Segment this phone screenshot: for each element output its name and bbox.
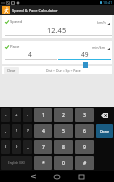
button[interactable]: * — [34, 156, 52, 170]
staticText: 3 — [83, 112, 86, 119]
staticText: ? — [27, 128, 29, 134]
staticText: ( — [5, 144, 7, 150]
staticText: _ — [27, 144, 29, 150]
staticText: km/h — [97, 20, 106, 25]
button[interactable]: Recents — [69, 171, 93, 182]
staticText: 0 — [62, 160, 65, 167]
button[interactable]: 4 — [34, 124, 52, 138]
staticText: , — [5, 128, 7, 134]
button[interactable]: 7 — [34, 140, 52, 154]
button[interactable]: ? — [23, 124, 32, 138]
staticText: # — [83, 160, 87, 167]
button[interactable]: 2 — [54, 108, 73, 122]
staticText: 4 — [42, 128, 45, 135]
button[interactable]: 8 — [54, 140, 73, 154]
staticText: Done — [100, 129, 110, 134]
button[interactable]: Done — [96, 124, 113, 138]
staticText: 9 — [83, 144, 86, 151]
button[interactable]: English (UK) — [1, 156, 32, 170]
staticText: Dist ÷ Dur = Sp ÷ Pace — [46, 68, 81, 73]
button[interactable]: Home — [45, 171, 69, 182]
staticText: 10:41 — [103, 0, 113, 5]
staticText: ) — [16, 144, 18, 150]
staticText: Speed — [10, 19, 23, 25]
button[interactable]: # — [75, 156, 94, 170]
staticText: 7 — [42, 144, 45, 151]
staticText: 8 — [62, 144, 65, 151]
button[interactable]: Clear — [4, 67, 19, 74]
staticText: Clear — [7, 68, 16, 73]
button[interactable]: 5 — [54, 124, 73, 138]
staticText: 12.45 — [47, 25, 67, 35]
button[interactable]: 3 — [75, 108, 94, 122]
button[interactable]: , — [1, 124, 10, 138]
button[interactable]: Back — [21, 171, 45, 182]
staticText: 49 — [81, 50, 89, 59]
staticText: . — [27, 112, 29, 118]
staticText: 4 — [28, 50, 32, 59]
button[interactable]: . — [23, 108, 32, 122]
button[interactable]: 9 — [75, 140, 94, 154]
staticText: English (UK) — [8, 161, 25, 165]
button[interactable]: ) — [12, 140, 21, 154]
button[interactable]: _ — [23, 140, 32, 154]
staticText: Pace — [10, 44, 20, 50]
staticText: 2 — [62, 112, 65, 119]
staticText: min/km — [92, 45, 106, 50]
button[interactable]: 0 — [54, 156, 73, 170]
staticText: 6 — [83, 128, 86, 135]
staticText: Speed & Pace Calculator — [12, 8, 58, 13]
button[interactable]: 6 — [75, 124, 94, 138]
staticText: * — [42, 160, 45, 167]
staticText: 5 — [62, 128, 65, 135]
button[interactable]: ( — [1, 140, 10, 154]
button[interactable]: Backspace — [95, 107, 114, 123]
button[interactable]: + — [12, 108, 21, 122]
staticText: 1 — [42, 112, 45, 119]
staticText: - — [5, 112, 7, 118]
button[interactable]: - — [1, 108, 10, 122]
staticText: ! — [16, 128, 18, 134]
staticText: + — [15, 112, 18, 118]
button[interactable]: ! — [12, 124, 21, 138]
button[interactable]: 1 — [34, 108, 52, 122]
